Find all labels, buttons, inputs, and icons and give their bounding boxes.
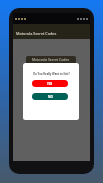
staticText: Do You Really Want to Exit? bbox=[33, 72, 70, 76]
button[interactable]: NO bbox=[32, 93, 68, 100]
staticText: NO bbox=[48, 95, 53, 99]
button[interactable]: YES bbox=[32, 80, 68, 87]
staticText: Motorola Secret Codes bbox=[16, 31, 57, 36]
staticText: Motorola Secret Codes bbox=[32, 57, 70, 62]
staticText: YES bbox=[47, 82, 53, 86]
